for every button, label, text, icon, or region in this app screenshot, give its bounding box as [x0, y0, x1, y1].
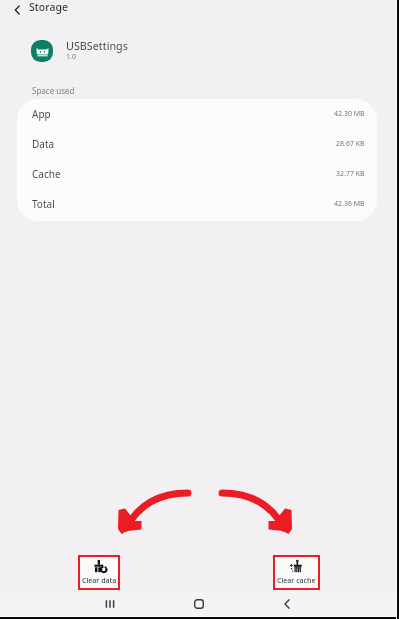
button[interactable]: Cache	[17, 159, 377, 189]
staticText: USBSettings	[66, 38, 128, 53]
staticText: Space used	[32, 85, 75, 96]
button[interactable]: Clear cache	[273, 555, 320, 590]
staticText: 28.67 KB	[336, 139, 365, 149]
staticText: Total	[32, 197, 55, 211]
button[interactable]: Data	[17, 129, 377, 159]
button[interactable]: Total	[17, 189, 377, 219]
button[interactable]: Recents	[94, 592, 126, 616]
staticText: 1.0	[66, 52, 76, 62]
button[interactable]: Home	[183, 592, 215, 616]
staticText: 32.77 KB	[336, 169, 365, 179]
staticText: Cache	[32, 167, 61, 181]
staticText: Data	[32, 137, 55, 151]
staticText: Clear data	[82, 576, 117, 586]
button[interactable]: App	[17, 99, 377, 129]
button[interactable]: Clear data	[78, 555, 120, 590]
staticText: Clear cache	[277, 576, 316, 586]
staticText: 42.30 MB	[334, 109, 365, 119]
button[interactable]: Back	[271, 592, 303, 616]
staticText: Storage	[29, 0, 68, 14]
staticText: App	[32, 107, 51, 121]
button[interactable]: Back	[7, 0, 26, 19]
staticText: 42.36 MB	[334, 199, 365, 209]
